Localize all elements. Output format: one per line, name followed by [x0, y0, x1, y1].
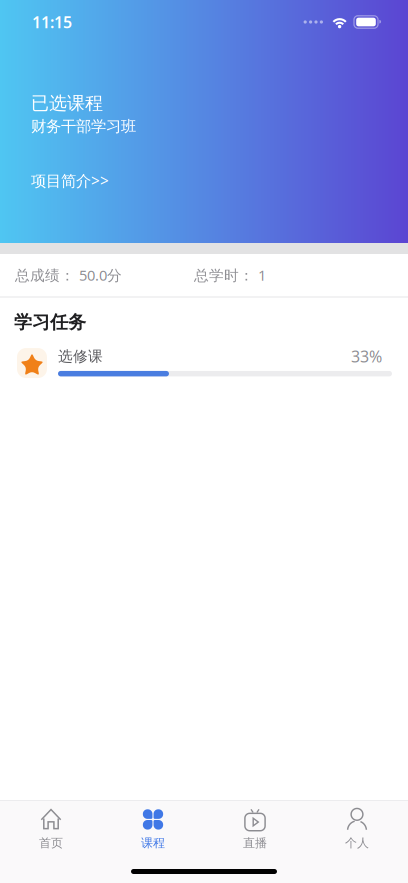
staticText: 直播: [243, 835, 267, 850]
button[interactable]: 首页: [0, 801, 102, 858]
button[interactable]: 个人: [306, 801, 408, 858]
staticText: 11:15: [32, 11, 72, 33]
staticText: 总成绩： 50.0分: [15, 265, 122, 285]
staticText: 已选课程: [31, 92, 103, 115]
button[interactable]: 项目简介>>: [0, 164, 129, 197]
button[interactable]: 课程: [102, 801, 204, 858]
staticText: 总学时： 1: [194, 265, 266, 285]
staticText: 财务干部学习班: [31, 117, 136, 136]
button[interactable]: 选修课: [0, 334, 408, 384]
staticText: 个人: [345, 835, 369, 850]
staticText: 首页: [39, 835, 63, 850]
staticText: 学习任务: [14, 311, 86, 334]
staticText: 选修课: [58, 347, 103, 366]
staticText: 课程: [141, 835, 165, 850]
button[interactable]: 直播: [204, 801, 306, 858]
staticText: 项目简介>>: [31, 170, 109, 191]
staticText: 33%: [351, 346, 382, 367]
